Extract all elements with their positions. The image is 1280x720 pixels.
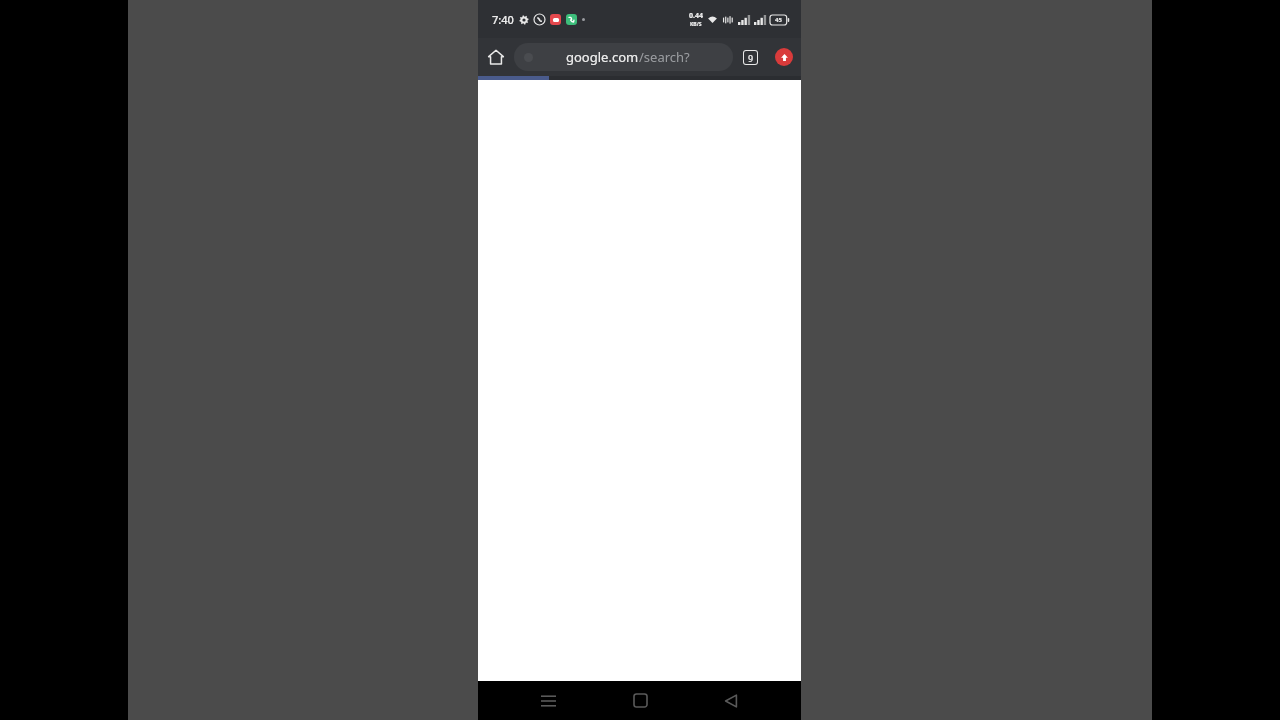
button[interactable]: google.com [514, 43, 733, 71]
staticText: 45 [775, 16, 782, 24]
staticText: 7:40 [492, 12, 514, 27]
button[interactable]: Tabs [733, 40, 767, 74]
staticText: KB/S [690, 21, 702, 28]
staticText: google.com [566, 48, 639, 66]
button[interactable]: Back [709, 681, 753, 720]
staticText: /search? [639, 48, 690, 66]
staticText: 9 [748, 52, 754, 64]
button[interactable]: Update [767, 40, 801, 74]
button[interactable]: Home [478, 39, 514, 75]
button[interactable]: Recent apps [526, 681, 570, 720]
staticText: 0.44 [689, 11, 703, 21]
button[interactable]: Home [618, 681, 662, 720]
